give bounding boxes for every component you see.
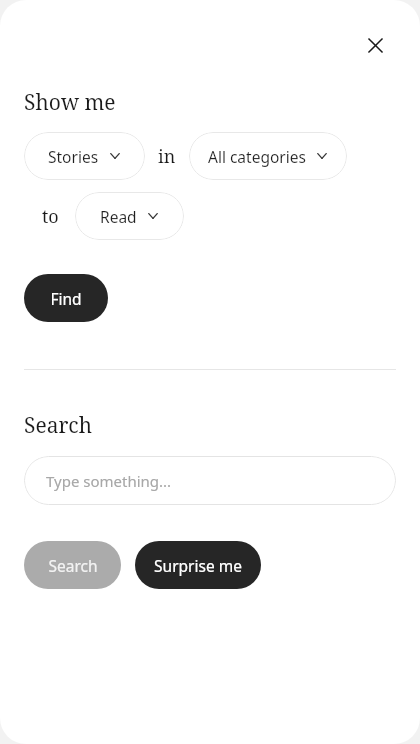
button[interactable]: All categories	[189, 132, 347, 180]
staticText: Stories	[48, 146, 99, 167]
staticText: Read	[100, 206, 137, 227]
staticText: Search	[48, 555, 98, 576]
staticText: Surprise me	[154, 555, 242, 576]
button[interactable]: Find	[24, 274, 108, 322]
button[interactable]: Read	[75, 192, 184, 240]
staticText: Find	[50, 288, 82, 309]
staticText: All categories	[208, 146, 306, 167]
staticText: Search	[24, 411, 93, 440]
staticText: Show me	[24, 88, 116, 117]
staticText: Type something...	[46, 471, 172, 491]
button[interactable]: Search	[24, 541, 121, 589]
button[interactable]: Surprise me	[135, 541, 261, 589]
staticText: to	[42, 204, 59, 229]
button[interactable]: Stories	[24, 132, 145, 180]
staticText: in	[158, 144, 176, 169]
button[interactable]: Close	[353, 23, 397, 67]
button[interactable]: Type something...	[24, 456, 396, 505]
